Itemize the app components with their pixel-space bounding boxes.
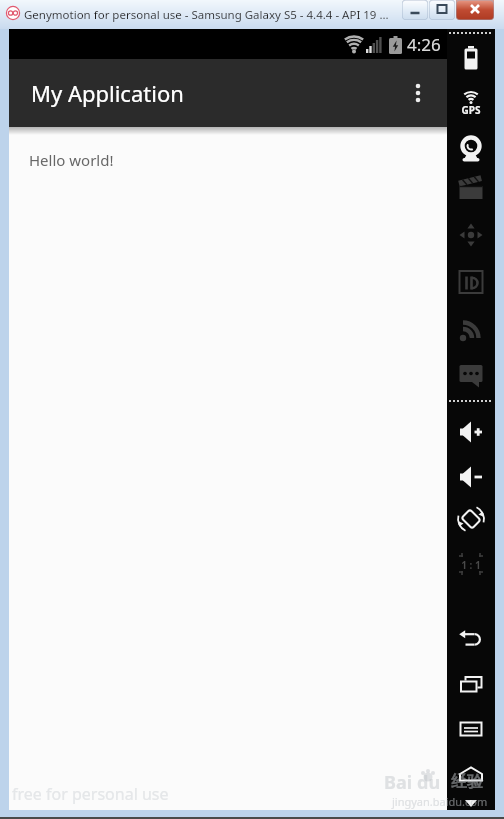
- staticText: Genymotion for personal use - Samsung Ga…: [24, 7, 389, 23]
- button[interactable]: [447, 264, 495, 304]
- button[interactable]: [447, 356, 495, 396]
- staticText: 1 : 1: [447, 558, 495, 572]
- button[interactable]: [447, 39, 495, 79]
- button[interactable]: [447, 500, 495, 540]
- staticText: My Application: [31, 78, 184, 108]
- button[interactable]: [402, 0, 428, 20]
- button[interactable]: [447, 79, 495, 119]
- button[interactable]: [447, 411, 495, 451]
- staticText: 经验: [451, 772, 483, 792]
- button[interactable]: [447, 456, 495, 496]
- button[interactable]: [447, 621, 495, 661]
- button[interactable]: [447, 310, 495, 350]
- button[interactable]: [456, 0, 494, 20]
- button[interactable]: [447, 710, 495, 750]
- staticText: free for personal use: [12, 783, 169, 805]
- button[interactable]: [429, 0, 455, 20]
- button[interactable]: [447, 130, 495, 170]
- staticText: Hello world!: [29, 150, 114, 170]
- staticText: Bai: [384, 770, 413, 795]
- button[interactable]: [447, 545, 495, 585]
- staticText: 4:26: [407, 33, 441, 56]
- staticText: jingyan.baidu.com: [392, 794, 488, 809]
- button[interactable]: [447, 754, 495, 794]
- button[interactable]: [447, 217, 495, 257]
- button[interactable]: [447, 665, 495, 705]
- button[interactable]: [447, 170, 495, 210]
- staticText: GPS: [447, 103, 495, 117]
- button[interactable]: [403, 69, 433, 117]
- staticText: du: [417, 770, 441, 795]
